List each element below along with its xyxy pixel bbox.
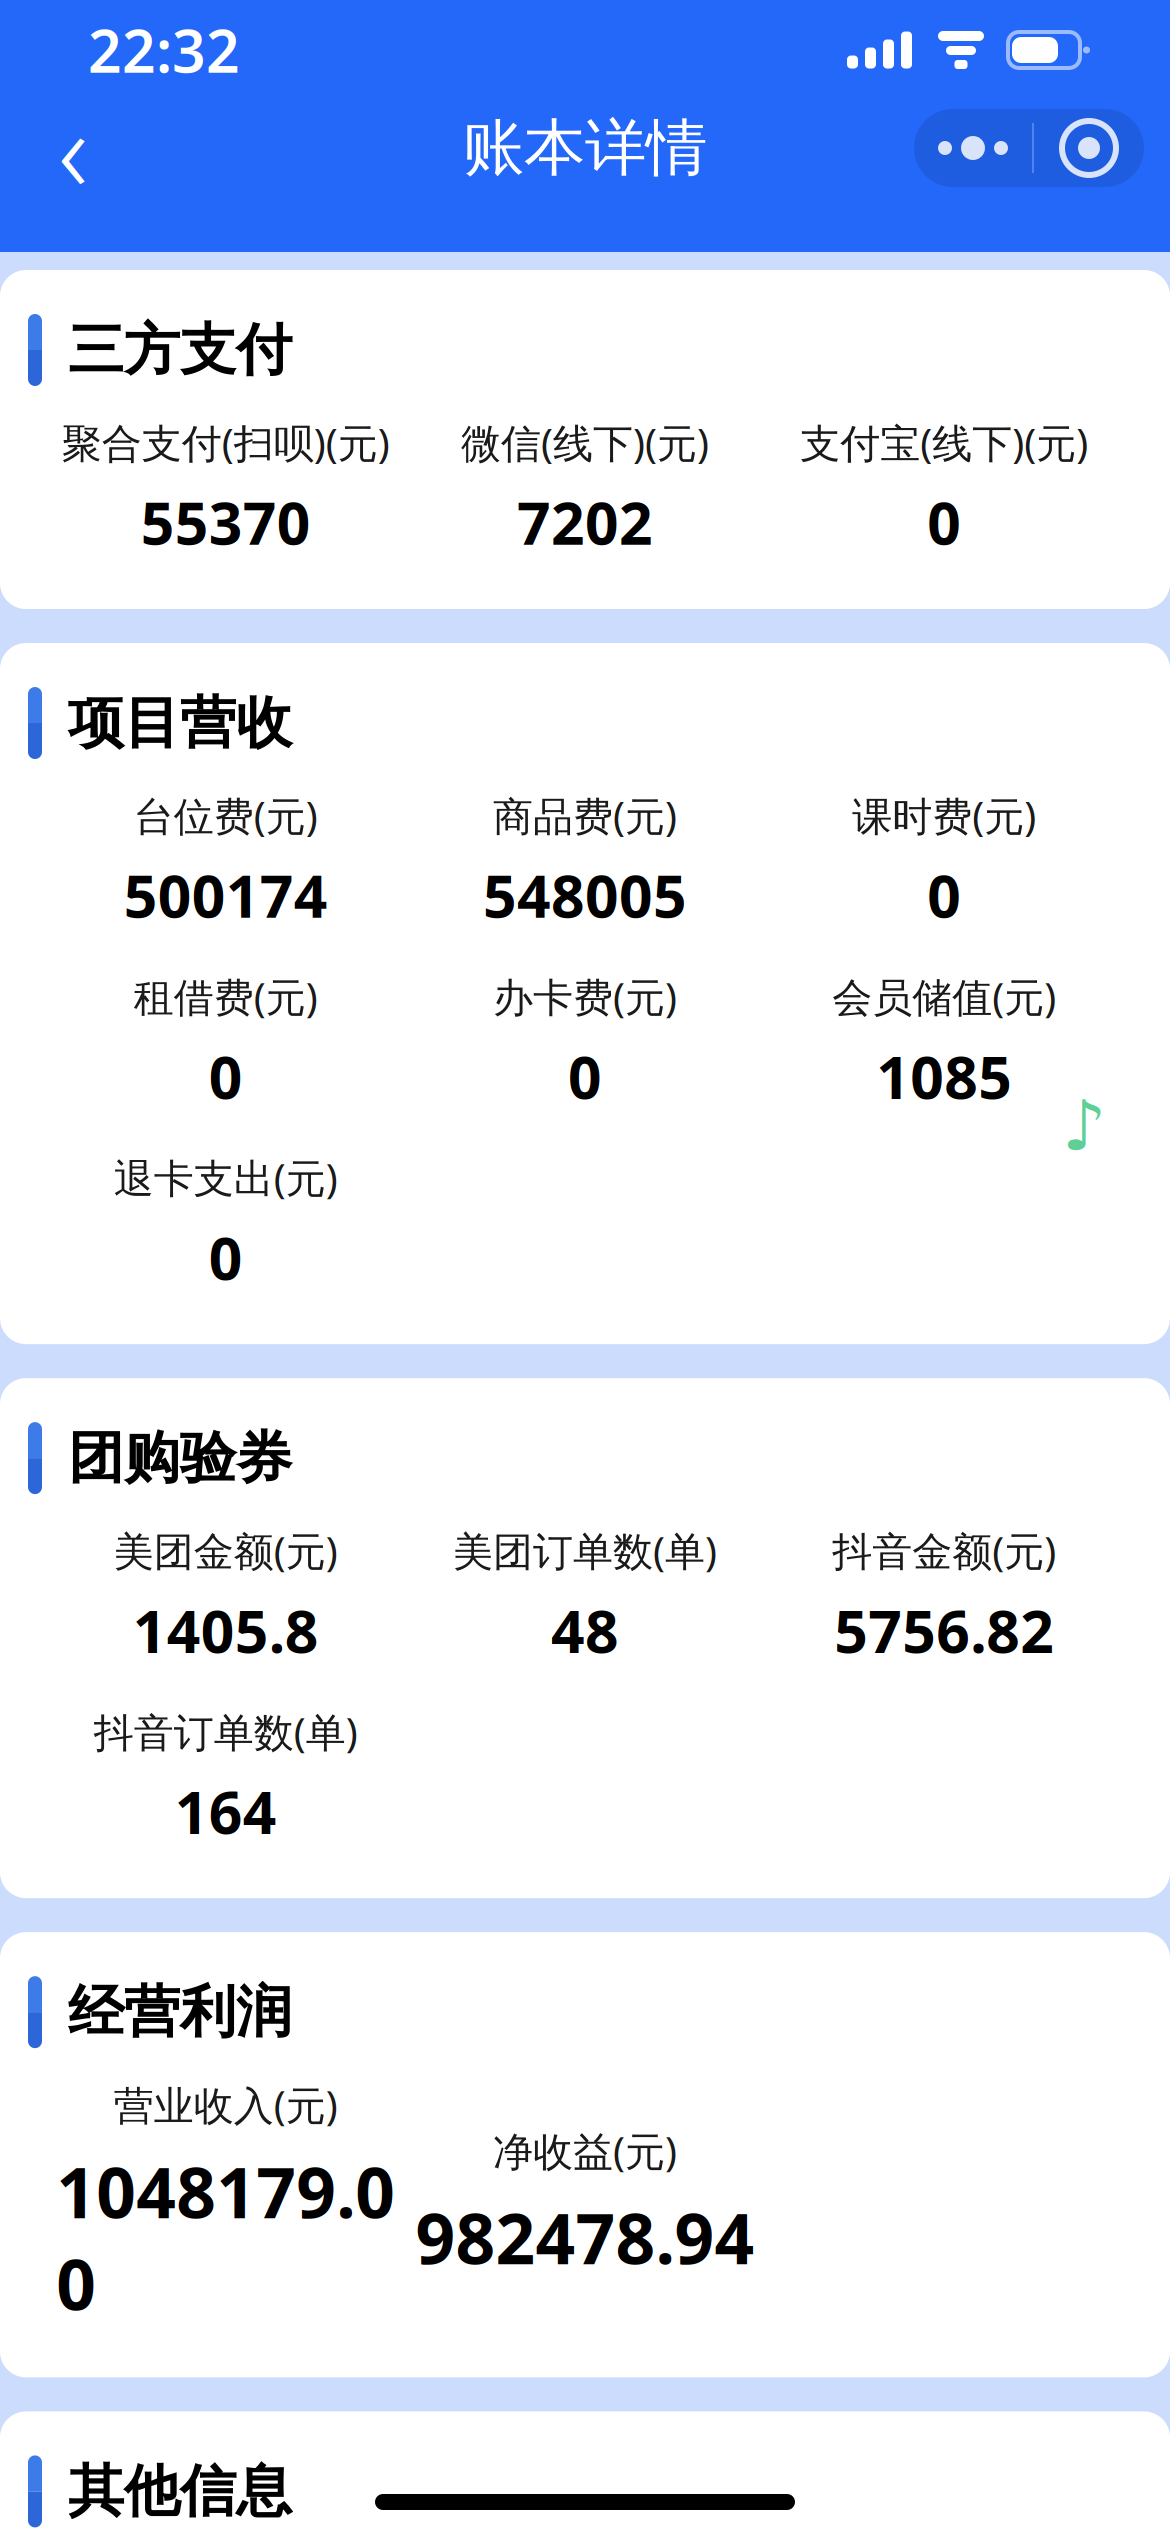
- staticText: 0: [209, 1218, 243, 1296]
- staticText: 退卡支出(元): [114, 1151, 338, 1204]
- staticText: 会员储值(元): [832, 970, 1056, 1023]
- button[interactable]: Music: [1028, 1068, 1170, 1184]
- staticText: 项目营收: [68, 689, 292, 757]
- staticText: 团购验券: [68, 1424, 292, 1492]
- staticText: 5756.82: [834, 1591, 1054, 1669]
- button[interactable]: Back: [18, 100, 128, 196]
- staticText: 55370: [141, 483, 311, 561]
- staticText: 抖音订单数(单): [94, 1705, 358, 1758]
- staticText: 微信(线下)(元): [461, 416, 709, 469]
- staticText: ‹: [58, 72, 88, 224]
- staticText: ♪: [1062, 1087, 1106, 1165]
- staticText: 548005: [483, 856, 687, 934]
- staticText: 164: [175, 1772, 277, 1850]
- staticText: 商品费(元): [493, 789, 677, 842]
- staticText: 其他信息: [68, 2457, 292, 2526]
- staticText: 抖音金额(元): [832, 1524, 1056, 1577]
- staticText: 0: [927, 483, 961, 561]
- staticText: 48: [551, 1591, 619, 1669]
- staticText: 三方支付: [68, 316, 292, 384]
- staticText: 台位费(元): [134, 789, 318, 842]
- staticText: 净收益(元): [493, 2124, 677, 2177]
- staticText: 0: [209, 1037, 243, 1115]
- staticText: 美团订单数(单): [453, 1524, 717, 1577]
- staticText: 1405.8: [133, 1591, 319, 1669]
- button[interactable]: Close mini program: [1034, 109, 1144, 187]
- staticText: 0: [568, 1037, 602, 1115]
- staticText: 办卡费(元): [493, 970, 677, 1023]
- staticText: 美团金额(元): [114, 1524, 338, 1577]
- staticText: 营业收入(元): [114, 2078, 338, 2131]
- staticText: 租借费(元): [134, 970, 318, 1023]
- staticText: 7202: [517, 483, 653, 561]
- staticText: 聚合支付(扫呗)(元): [62, 416, 390, 469]
- staticText: 支付宝(线下)(元): [800, 416, 1088, 469]
- staticText: 经营利润: [68, 1978, 292, 2047]
- staticText: 账本详情: [463, 110, 707, 186]
- staticText: 1048179.00: [56, 2145, 395, 2329]
- staticText: 500174: [124, 856, 328, 934]
- staticText: 课时费(元): [852, 789, 1036, 842]
- staticText: 1085: [876, 1037, 1012, 1115]
- staticText: 982478.94: [415, 2191, 754, 2283]
- staticText: 0: [927, 856, 961, 934]
- staticText: 22:32: [88, 11, 240, 89]
- button[interactable]: More: [914, 109, 1032, 187]
